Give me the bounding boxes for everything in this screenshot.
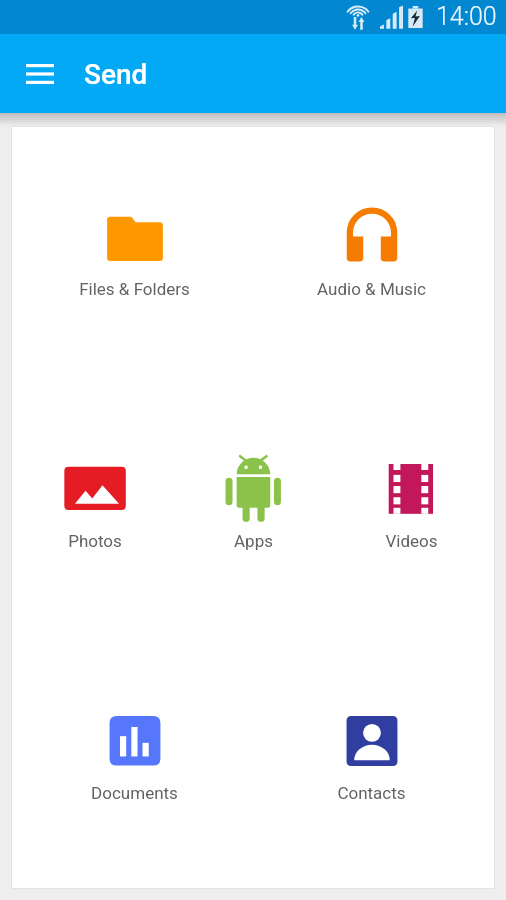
staticText: Documents xyxy=(91,783,178,803)
button[interactable]: Contacts xyxy=(253,634,490,888)
button[interactable]: Audio & Music xyxy=(253,127,490,380)
button[interactable]: Apps xyxy=(174,380,332,634)
button[interactable]: Photos xyxy=(16,380,174,634)
button[interactable]: Videos xyxy=(332,380,490,634)
staticText: Apps xyxy=(234,531,273,551)
button[interactable]: Open navigation menu xyxy=(14,48,66,100)
staticText: Audio & Music xyxy=(317,279,426,299)
staticText: 14:00 xyxy=(436,2,497,31)
staticText: Send xyxy=(84,58,148,91)
staticText: Photos xyxy=(68,531,122,551)
staticText: Videos xyxy=(385,531,438,551)
button[interactable]: Files & Folders xyxy=(16,127,253,380)
button[interactable]: Documents xyxy=(16,634,253,888)
staticText: Contacts xyxy=(337,783,406,803)
staticText: Files & Folders xyxy=(79,279,190,299)
